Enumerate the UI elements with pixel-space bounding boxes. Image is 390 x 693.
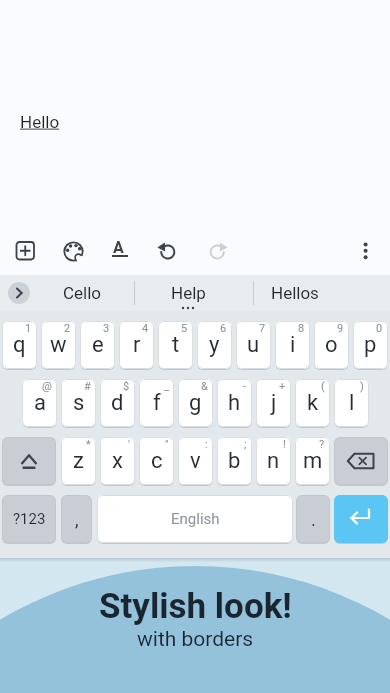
button[interactable]: p xyxy=(353,321,388,369)
staticText: 2 xyxy=(64,322,71,335)
staticText: : xyxy=(205,438,208,451)
staticText: l xyxy=(349,390,355,416)
staticText: q xyxy=(13,332,26,358)
button[interactable]: j xyxy=(256,379,291,427)
staticText: o xyxy=(325,332,338,358)
staticText: m xyxy=(303,448,323,474)
button[interactable]: g xyxy=(178,379,213,427)
staticText: a xyxy=(34,390,46,416)
button[interactable]: d xyxy=(100,379,135,427)
staticText: Help xyxy=(171,283,206,303)
button[interactable]: ?123 xyxy=(2,495,56,543)
staticText: with borders xyxy=(137,627,254,652)
button[interactable]: i xyxy=(275,321,310,369)
staticText: 1 xyxy=(25,322,32,335)
staticText: , xyxy=(75,509,79,530)
button[interactable]: o xyxy=(314,321,349,369)
staticText: Stylish look! xyxy=(99,586,292,627)
staticText: c xyxy=(151,448,163,474)
staticText: e xyxy=(92,332,104,358)
button[interactable]: l xyxy=(334,379,369,427)
button[interactable]: s xyxy=(61,379,96,427)
staticText: f xyxy=(153,390,161,416)
staticText: ?123 xyxy=(13,510,46,528)
button[interactable]: Cello xyxy=(38,275,126,311)
staticText: ) xyxy=(360,380,364,393)
staticText: - xyxy=(243,380,247,393)
button[interactable]: . xyxy=(296,495,330,543)
staticText: # xyxy=(84,380,91,393)
button[interactable] xyxy=(334,437,388,485)
staticText: v xyxy=(190,448,201,474)
button[interactable]: f xyxy=(139,379,174,427)
staticText: k xyxy=(307,390,319,416)
staticText: i xyxy=(290,332,296,358)
button[interactable]: h xyxy=(217,379,252,427)
staticText: A xyxy=(113,238,124,257)
staticText: z xyxy=(73,448,84,474)
staticText: 5 xyxy=(181,322,188,335)
button[interactable]: b xyxy=(217,437,252,485)
staticText: & xyxy=(201,380,208,393)
button[interactable]: w xyxy=(41,321,76,369)
staticText: @ xyxy=(42,380,52,393)
staticText: d xyxy=(111,390,124,416)
button[interactable]: Help xyxy=(144,275,232,311)
staticText: Cello xyxy=(63,283,102,303)
button[interactable]: , xyxy=(61,495,92,543)
button[interactable]: z xyxy=(61,437,96,485)
staticText: 7 xyxy=(259,322,266,335)
staticText: j xyxy=(271,390,277,416)
staticText: Hellos xyxy=(271,283,319,303)
button[interactable]: t xyxy=(158,321,193,369)
button[interactable]: English xyxy=(97,495,293,543)
staticText: 9 xyxy=(337,322,344,335)
button[interactable]: c xyxy=(139,437,174,485)
staticText: h xyxy=(228,390,241,416)
staticText: 3 xyxy=(103,322,110,335)
staticText: p xyxy=(364,332,377,358)
button[interactable]: n xyxy=(256,437,291,485)
staticText: ! xyxy=(283,438,286,451)
staticText: w xyxy=(50,332,67,358)
staticText: u xyxy=(247,332,260,358)
button[interactable]: x xyxy=(100,437,135,485)
button[interactable] xyxy=(8,282,30,304)
staticText: _ xyxy=(164,380,169,393)
button[interactable]: Hellos xyxy=(260,275,330,311)
staticText: t xyxy=(172,332,180,358)
button[interactable]: a xyxy=(22,379,57,427)
button[interactable]: u xyxy=(236,321,271,369)
button[interactable]: k xyxy=(295,379,330,427)
staticText: x xyxy=(112,448,123,474)
button[interactable]: m xyxy=(295,437,330,485)
staticText: g xyxy=(189,390,202,416)
staticText: ( xyxy=(321,380,325,393)
staticText: ; xyxy=(244,438,247,451)
button[interactable] xyxy=(2,437,56,485)
staticText: English xyxy=(171,510,220,528)
button[interactable]: q xyxy=(2,321,37,369)
staticText: + xyxy=(279,380,286,393)
staticText: b xyxy=(228,448,241,474)
staticText: 4 xyxy=(142,322,149,335)
staticText: 0 xyxy=(376,322,383,335)
staticText: " xyxy=(165,438,169,451)
staticText: ' xyxy=(128,438,130,451)
staticText: n xyxy=(267,448,280,474)
staticText: ? xyxy=(319,438,325,451)
button[interactable]: v xyxy=(178,437,213,485)
button[interactable]: e xyxy=(80,321,115,369)
button[interactable] xyxy=(334,495,388,543)
staticText: Hello xyxy=(20,112,60,132)
button[interactable]: y xyxy=(197,321,232,369)
staticText: s xyxy=(73,390,85,416)
staticText: * xyxy=(86,438,91,451)
staticText: . xyxy=(311,509,316,530)
staticText: 6 xyxy=(220,322,227,335)
staticText: y xyxy=(209,332,220,358)
staticText: r xyxy=(133,332,141,358)
button[interactable]: r xyxy=(119,321,154,369)
staticText: 8 xyxy=(298,322,305,335)
staticText: $ xyxy=(123,380,130,393)
